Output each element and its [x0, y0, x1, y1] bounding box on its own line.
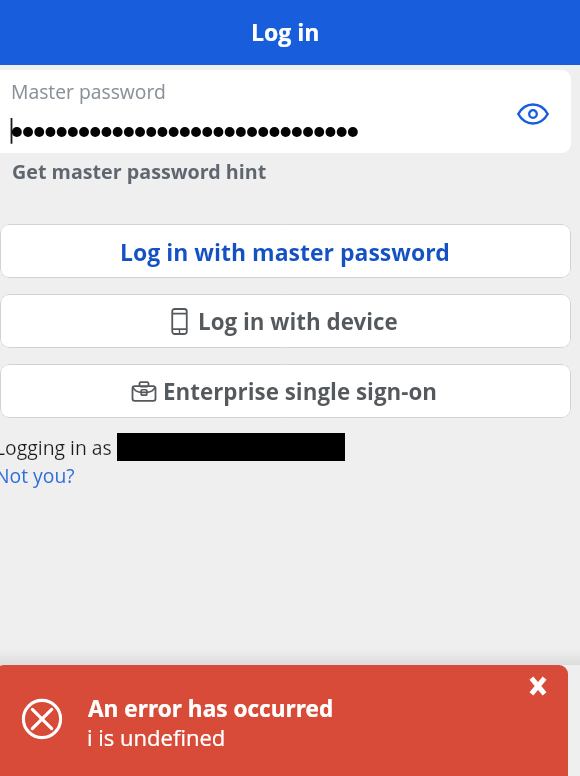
button[interactable]: Dismiss error	[521, 669, 555, 703]
staticText: Log in	[251, 16, 320, 47]
button[interactable]: Get master password hint	[12, 158, 267, 185]
staticText: i is undefined	[87, 722, 226, 752]
staticText: Get master password hint	[12, 158, 267, 185]
staticText: Master password	[11, 78, 166, 104]
staticText: Not you?	[0, 462, 75, 488]
button[interactable]: Log in with master password	[0, 224, 571, 278]
staticText: Log in with master password	[120, 236, 450, 267]
button[interactable]: Log in with device	[0, 294, 571, 348]
button[interactable]: Toggle password visibility	[511, 92, 555, 136]
button[interactable]: Enterprise single sign-on	[0, 364, 571, 418]
staticText: An error has occurred	[88, 693, 334, 724]
staticText: Log in with device	[198, 306, 398, 337]
button[interactable]: Not you?	[0, 462, 75, 488]
staticText: Enterprise single sign-on	[163, 376, 438, 407]
staticText: Logging in as	[0, 434, 117, 460]
